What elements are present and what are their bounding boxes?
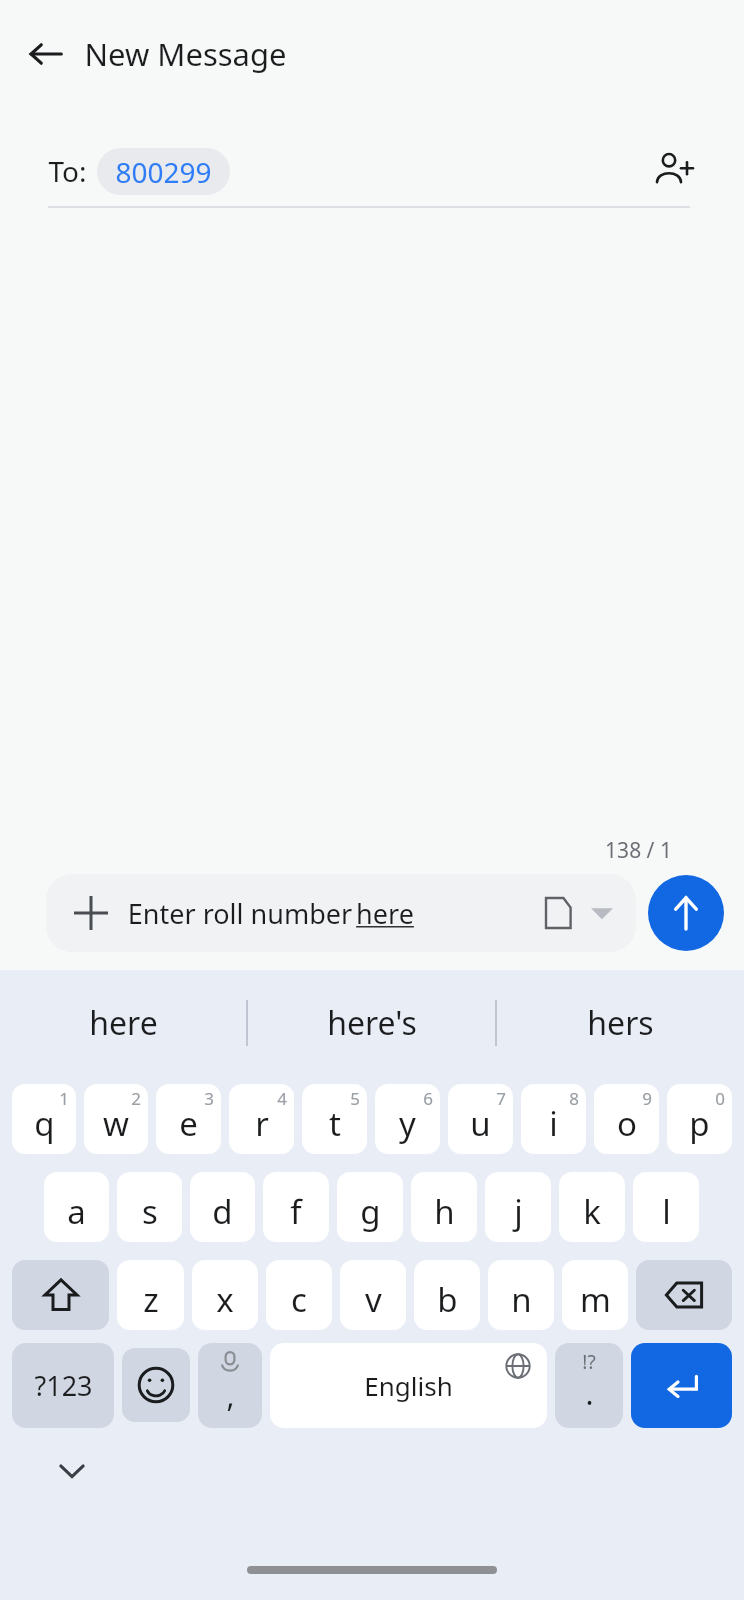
button[interactable]: 7	[448, 1084, 513, 1154]
button[interactable]: Emoji	[122, 1348, 190, 1422]
staticText: k	[583, 1189, 601, 1234]
staticText: m	[580, 1277, 611, 1322]
staticText: 2	[131, 1087, 141, 1110]
staticText: here	[356, 895, 414, 932]
staticText: To:	[48, 152, 87, 190]
staticText: q	[34, 1101, 55, 1146]
staticText: .	[585, 1373, 594, 1414]
staticText: f	[290, 1189, 302, 1234]
button[interactable]: d	[190, 1172, 255, 1242]
button[interactable]: English	[270, 1343, 547, 1428]
staticText: j	[514, 1189, 523, 1234]
button[interactable]: ?123	[12, 1343, 114, 1428]
button[interactable]: Send	[648, 875, 724, 951]
button[interactable]: Add contact	[642, 140, 704, 202]
staticText: Enter roll number	[124, 895, 356, 932]
staticText: 7	[496, 1087, 506, 1110]
button[interactable]: 9	[594, 1084, 659, 1154]
button[interactable]: v	[340, 1260, 406, 1330]
staticText: o	[617, 1101, 637, 1146]
button[interactable]: SIM 1	[534, 889, 582, 937]
button[interactable]: x	[192, 1260, 258, 1330]
staticText: d	[212, 1189, 233, 1234]
staticText: y	[399, 1101, 416, 1146]
button[interactable]: ,	[198, 1343, 262, 1428]
staticText: 8	[569, 1087, 579, 1110]
button[interactable]: c	[266, 1260, 332, 1330]
button[interactable]: Backspace	[636, 1260, 732, 1330]
staticText: 9	[642, 1087, 652, 1110]
button[interactable]: l	[633, 1172, 699, 1242]
button[interactable]: 800299	[97, 148, 230, 195]
staticText: 3	[204, 1087, 214, 1110]
staticText: English	[364, 1368, 453, 1403]
button[interactable]: 1	[12, 1084, 76, 1154]
staticText: hers	[587, 1001, 654, 1045]
staticText: t	[329, 1101, 341, 1146]
button[interactable]: 3	[156, 1084, 221, 1154]
staticText: g	[360, 1189, 381, 1234]
button[interactable]: a	[44, 1172, 109, 1242]
staticText: r	[255, 1101, 269, 1146]
button[interactable]: j	[485, 1172, 551, 1242]
staticText: i	[549, 1101, 558, 1146]
button[interactable]: m	[562, 1260, 628, 1330]
button[interactable]: Back	[14, 22, 78, 86]
button[interactable]: Attach	[64, 886, 118, 940]
button[interactable]: 5	[302, 1084, 367, 1154]
button[interactable]: Hide keyboard	[48, 1447, 96, 1495]
button[interactable]: k	[559, 1172, 625, 1242]
button[interactable]: Choose SIM	[582, 893, 622, 933]
staticText: u	[470, 1101, 491, 1146]
staticText: s	[142, 1189, 158, 1234]
button[interactable]: 4	[229, 1084, 294, 1154]
button[interactable]: z	[117, 1260, 184, 1330]
staticText: c	[291, 1277, 307, 1322]
staticText: 5	[350, 1087, 360, 1110]
button[interactable]: 0	[667, 1084, 732, 1154]
button[interactable]: n	[488, 1260, 554, 1330]
button[interactable]: h	[411, 1172, 477, 1242]
button[interactable]: 2	[84, 1084, 148, 1154]
staticText: 6	[423, 1087, 433, 1110]
button[interactable]: Shift	[12, 1260, 109, 1330]
button[interactable]: 6	[375, 1084, 440, 1154]
staticText: ?123	[34, 1367, 93, 1404]
staticText: here's	[327, 1001, 417, 1045]
staticText: z	[143, 1277, 159, 1322]
button[interactable]: f	[263, 1172, 329, 1242]
staticText: x	[216, 1277, 234, 1322]
staticText: h	[434, 1189, 455, 1234]
staticText: 0	[715, 1087, 725, 1110]
button[interactable]: Enter	[631, 1343, 732, 1428]
staticText: a	[67, 1189, 86, 1234]
staticText: p	[689, 1101, 710, 1146]
staticText: n	[511, 1277, 532, 1322]
staticText: ,	[226, 1375, 235, 1416]
staticText: 800299	[115, 153, 212, 191]
staticText: 138 / 1	[605, 836, 672, 865]
staticText: New Message	[84, 33, 287, 75]
staticText: 4	[277, 1087, 287, 1110]
staticText: e	[179, 1101, 198, 1146]
staticText: 1	[59, 1087, 69, 1110]
button[interactable]: here's	[248, 970, 495, 1075]
button[interactable]: g	[337, 1172, 403, 1242]
staticText: b	[437, 1277, 458, 1322]
staticText: here	[89, 1001, 158, 1045]
button[interactable]: s	[117, 1172, 182, 1242]
staticText: v	[365, 1277, 382, 1322]
button[interactable]: hers	[497, 970, 744, 1075]
staticText: !?	[582, 1349, 596, 1375]
staticText: w	[103, 1101, 129, 1146]
button[interactable]: here	[0, 970, 246, 1075]
button[interactable]: !?	[555, 1343, 623, 1428]
staticText: l	[662, 1189, 671, 1234]
button[interactable]: b	[414, 1260, 480, 1330]
button[interactable]: Attach	[46, 874, 636, 952]
button[interactable]: 8	[521, 1084, 586, 1154]
